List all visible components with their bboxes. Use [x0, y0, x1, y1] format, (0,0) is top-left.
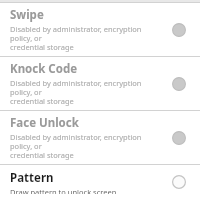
button[interactable]: Swipe: [0, 3, 200, 56]
button[interactable]: Disabled option: [170, 21, 188, 39]
other: Disabled option: [172, 77, 186, 91]
button[interactable]: Pattern: [0, 165, 200, 200]
staticText: Disabled by administrator, encryption po…: [10, 24, 164, 52]
staticText: Pattern: [10, 170, 54, 186]
staticText: Draw pattern to unlock screen: [10, 187, 117, 194]
other: Disabled option: [172, 131, 186, 145]
button[interactable]: Disabled option: [170, 75, 188, 93]
staticText: Disabled by administrator, encryption po…: [10, 132, 164, 160]
staticText: Knock Code: [10, 61, 78, 77]
button[interactable]: Disabled option: [170, 129, 188, 147]
button[interactable]: [170, 173, 188, 191]
button[interactable]: Knock Code: [0, 57, 200, 110]
other: Disabled option: [172, 23, 186, 37]
staticText: Disabled by administrator, encryption po…: [10, 78, 164, 106]
staticText: Face Unlock: [10, 115, 79, 131]
button[interactable]: Face Unlock: [0, 111, 200, 164]
staticText: Swipe: [10, 7, 44, 23]
